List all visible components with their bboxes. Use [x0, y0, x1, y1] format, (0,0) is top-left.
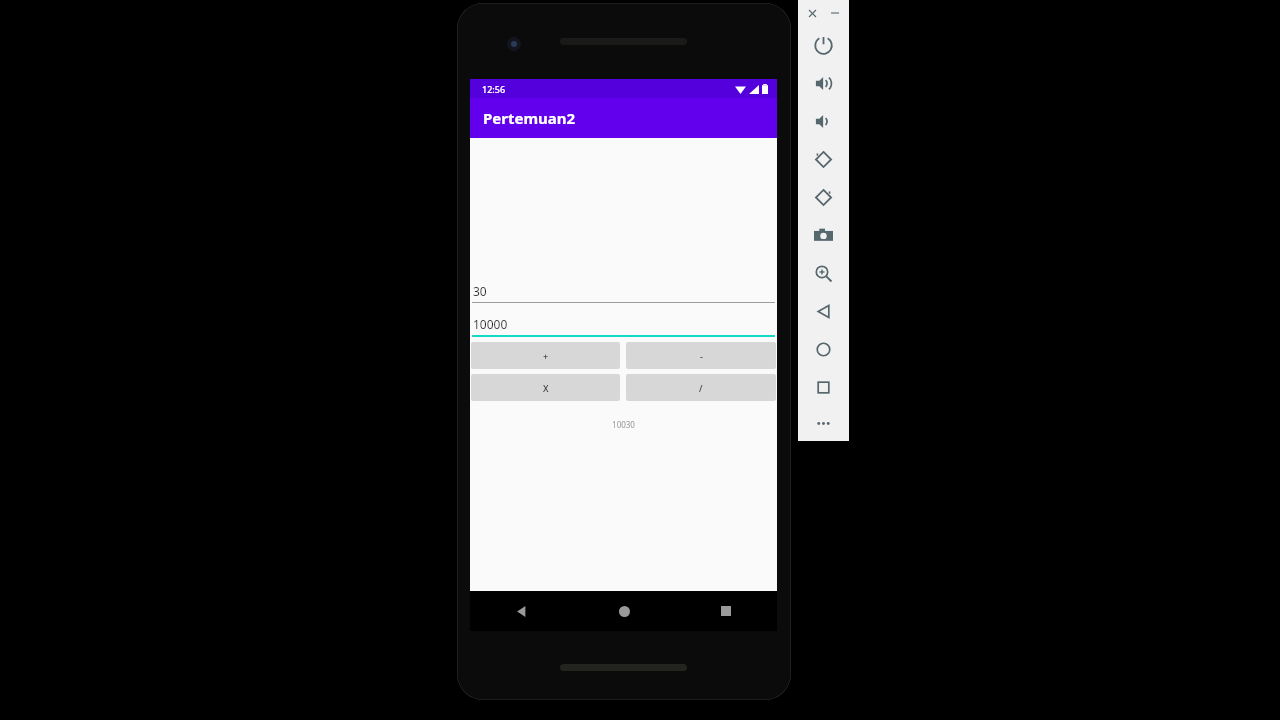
button[interactable]: Back — [798, 292, 849, 330]
staticText: + — [543, 350, 549, 362]
button[interactable]: Take screenshot — [798, 216, 849, 254]
button[interactable]: Volume down — [798, 102, 849, 140]
button[interactable]: Home — [798, 330, 849, 368]
button[interactable]: Back — [470, 591, 573, 631]
staticText: X — [543, 382, 549, 394]
staticText: 10030 — [470, 419, 777, 430]
staticText: - — [700, 350, 703, 362]
button[interactable]: Minimize — [827, 5, 843, 21]
button[interactable]: More — [798, 406, 849, 441]
button[interactable]: Home — [573, 591, 675, 631]
button[interactable]: Close — [804, 5, 820, 21]
button[interactable]: Overview — [798, 368, 849, 406]
staticText: Pertemuan2 — [483, 108, 576, 128]
button[interactable]: Rotate left — [798, 140, 849, 178]
staticText: 10000 — [473, 316, 508, 332]
button[interactable]: 30 — [470, 280, 777, 303]
staticText: / — [699, 382, 703, 394]
button[interactable]: 10000 — [470, 313, 777, 337]
button[interactable]: Recents — [675, 591, 777, 631]
button[interactable]: Volume up — [798, 64, 849, 102]
staticText: 12:56 — [482, 83, 506, 95]
button[interactable]: Rotate right — [798, 178, 849, 216]
button[interactable]: X — [471, 374, 620, 401]
staticText: 30 — [473, 283, 487, 299]
button[interactable]: Zoom — [798, 254, 849, 292]
button[interactable]: / — [626, 374, 776, 401]
button[interactable]: + — [471, 342, 620, 369]
button[interactable]: Power — [798, 26, 849, 64]
